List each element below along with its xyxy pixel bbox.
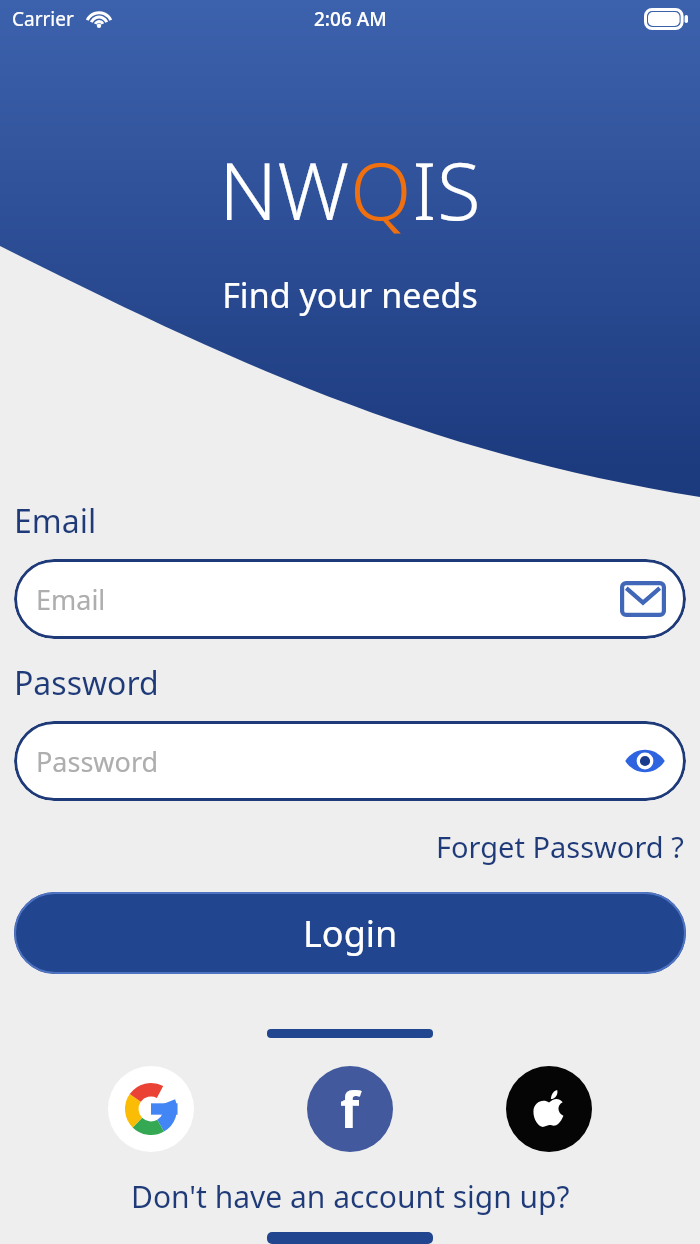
staticText: Don't have an account sign up?	[131, 1176, 570, 1217]
staticText: Login	[303, 909, 398, 958]
staticText: 2:06 AM	[314, 6, 387, 32]
button[interactable]: Sign in with Facebook	[307, 1066, 393, 1152]
staticText: Find your needs	[0, 272, 700, 318]
staticText: Email	[36, 581, 106, 618]
staticText: Email	[14, 499, 97, 543]
button[interactable]: Show password	[620, 736, 670, 786]
button[interactable]: Email	[14, 559, 686, 639]
staticText: Carrier	[12, 6, 74, 32]
button[interactable]: Sign in with Google	[108, 1066, 194, 1152]
button[interactable]: Login	[14, 892, 686, 974]
staticText: Forget Password ?	[436, 827, 684, 866]
button[interactable]: Sign in with Apple	[506, 1066, 592, 1152]
staticText: Password	[36, 743, 159, 780]
staticText: IS	[412, 134, 481, 243]
staticText: Q	[350, 134, 412, 243]
staticText: Password	[14, 661, 159, 705]
staticText: NW	[219, 134, 350, 243]
button[interactable]: Don't have an account sign up?	[131, 1176, 570, 1217]
staticText: f	[340, 1075, 360, 1143]
button[interactable]: Password	[14, 721, 686, 801]
button[interactable]: Forget Password ?	[434, 823, 686, 870]
